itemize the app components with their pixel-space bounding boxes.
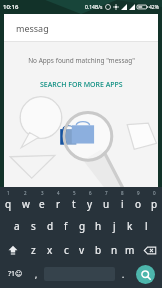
button[interactable]: Search	[136, 265, 155, 284]
staticText: a	[14, 219, 20, 233]
button[interactable]: h	[90, 214, 106, 238]
staticText: q	[5, 197, 12, 211]
button[interactable]: 4	[50, 190, 66, 214]
staticText: ?1☺	[8, 269, 23, 279]
button[interactable]: 9	[130, 190, 146, 214]
button[interactable]: SEARCH FOR MORE APPS	[34, 78, 129, 92]
staticText: 42%	[149, 4, 159, 11]
button[interactable]: f	[58, 214, 74, 238]
button[interactable]: 8	[114, 190, 130, 214]
staticText: e	[39, 197, 45, 211]
staticText: h	[95, 219, 102, 233]
staticText: n	[111, 243, 118, 257]
staticText: s	[31, 219, 36, 233]
staticText: k	[127, 219, 133, 233]
staticText: 8	[121, 190, 124, 196]
staticText: u	[103, 197, 110, 211]
staticText: x	[47, 243, 53, 257]
staticText: v	[79, 243, 85, 257]
button[interactable]: 7	[98, 190, 114, 214]
staticText: m	[125, 243, 135, 257]
button[interactable]: Backspace	[138, 238, 162, 262]
staticText: .	[122, 269, 125, 280]
staticText: 9	[137, 190, 140, 196]
staticText: i	[121, 197, 124, 211]
staticText: messag	[16, 22, 49, 34]
button[interactable]: g	[74, 214, 90, 238]
staticText: t	[72, 197, 76, 211]
button[interactable]: ?1☺	[2, 264, 28, 284]
button[interactable]: a	[8, 214, 25, 238]
staticText: l	[145, 219, 148, 233]
staticText: f	[64, 219, 68, 233]
button[interactable]: c	[58, 238, 74, 262]
button[interactable]: n	[106, 238, 122, 262]
staticText: 6	[89, 190, 92, 196]
staticText: SEARCH FOR MORE APPS	[40, 80, 123, 90]
staticText: b	[95, 243, 102, 257]
button[interactable]: k	[122, 214, 138, 238]
staticText: No Apps found matching "messag"	[28, 56, 135, 65]
staticText: 3	[41, 190, 44, 196]
button[interactable]: z	[25, 238, 42, 262]
button[interactable]: ,	[28, 264, 44, 284]
button[interactable]: 5	[66, 190, 82, 214]
staticText: o	[135, 197, 142, 211]
staticText: d	[47, 219, 54, 233]
button[interactable]: 6	[82, 190, 98, 214]
button[interactable]: j	[106, 214, 122, 238]
button[interactable]: 1	[0, 190, 17, 214]
staticText: 2	[24, 190, 27, 196]
staticText: y	[87, 197, 93, 211]
button[interactable]: 2	[17, 190, 34, 214]
button[interactable]: Shift	[0, 238, 25, 262]
button[interactable]: x	[42, 238, 58, 262]
staticText: z	[31, 243, 36, 257]
staticText: 0.14B/s	[85, 4, 103, 11]
button[interactable]: messag	[4, 14, 158, 41]
button[interactable]: 0	[146, 190, 162, 214]
staticText: 7	[105, 190, 108, 196]
staticText: 0	[153, 190, 156, 196]
staticText: 1	[7, 190, 10, 196]
staticText: g	[79, 219, 86, 233]
staticText: 10:16	[3, 3, 19, 11]
button[interactable]: 3	[34, 190, 50, 214]
button[interactable]: d	[42, 214, 58, 238]
button[interactable]: s	[25, 214, 42, 238]
button[interactable]: b	[90, 238, 106, 262]
button[interactable]: .	[115, 264, 131, 284]
staticText: ,	[35, 269, 38, 280]
staticText: 4	[57, 190, 60, 196]
staticText: 5	[73, 190, 76, 196]
staticText: w	[22, 197, 30, 211]
staticText: j	[113, 219, 116, 233]
button[interactable]: l	[138, 214, 154, 238]
staticText: r	[56, 197, 61, 211]
button[interactable]: m	[122, 238, 138, 262]
staticText: c	[64, 243, 69, 257]
staticText: p	[151, 197, 158, 211]
button[interactable]: v	[74, 238, 90, 262]
